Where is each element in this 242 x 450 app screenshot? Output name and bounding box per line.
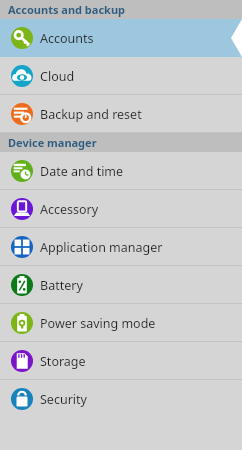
button[interactable]: Application manager	[0, 228, 242, 266]
staticText: Accessory	[40, 201, 99, 218]
button[interactable]: Battery	[0, 266, 242, 304]
staticText: Backup and reset	[40, 106, 142, 123]
button[interactable]: Accounts	[0, 19, 242, 57]
button[interactable]: Security	[0, 380, 242, 418]
staticText: Device manager	[8, 135, 97, 150]
button[interactable]: Power saving mode	[0, 304, 242, 342]
staticText: Accounts and backup	[8, 2, 125, 17]
staticText: Battery	[40, 277, 83, 294]
button[interactable]: Storage	[0, 342, 242, 380]
button[interactable]: Backup and reset	[0, 95, 242, 133]
button[interactable]: Accessory	[0, 190, 242, 228]
staticText: Power saving mode	[40, 315, 156, 332]
staticText: Storage	[40, 353, 86, 370]
button[interactable]: Cloud	[0, 57, 242, 95]
button[interactable]: Date and time	[0, 152, 242, 190]
staticText: Application manager	[40, 239, 163, 256]
staticText: Accounts	[40, 30, 94, 47]
staticText: Date and time	[40, 163, 124, 180]
staticText: Security	[40, 391, 87, 408]
staticText: Cloud	[40, 68, 75, 85]
